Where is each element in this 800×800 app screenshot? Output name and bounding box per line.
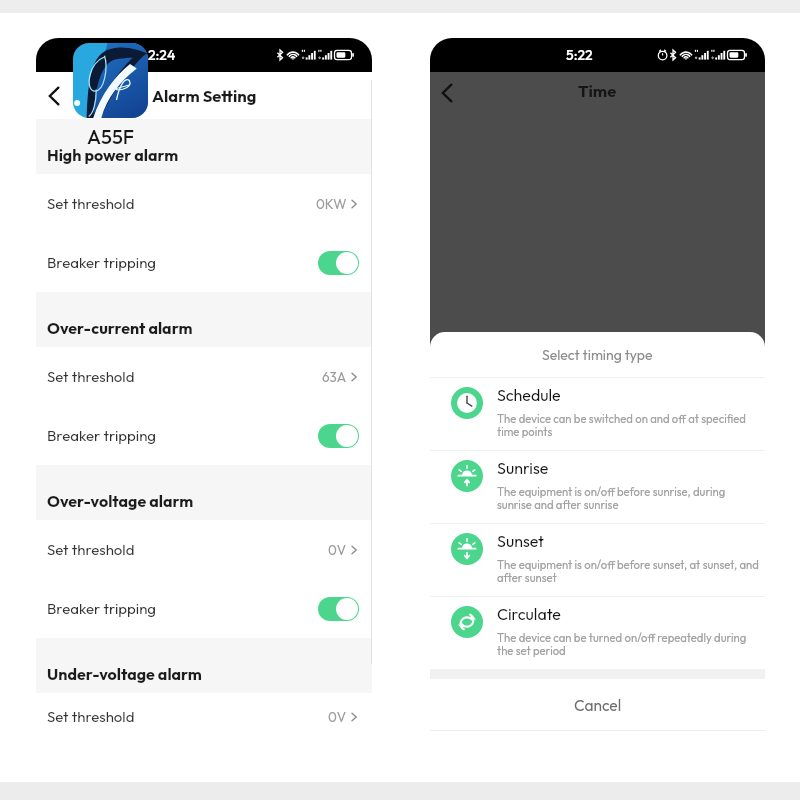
- staticText: Time: [578, 80, 617, 101]
- staticText: Set threshold: [47, 367, 135, 386]
- staticText: Sunset: [497, 531, 544, 551]
- staticText: Breaker tripping: [47, 253, 157, 272]
- staticText: 0V: [328, 708, 347, 725]
- staticText: Breaker tripping: [47, 426, 157, 445]
- staticText: Set threshold: [47, 194, 135, 213]
- button[interactable]: Cancel: [430, 679, 765, 730]
- staticText: Circulate: [497, 604, 561, 624]
- button[interactable]: Circulate: [430, 597, 765, 669]
- staticText: Cancel: [574, 695, 622, 715]
- staticText: Sunrise: [497, 458, 549, 478]
- staticText: Schedule: [497, 385, 561, 405]
- staticText: 5:22: [566, 46, 593, 64]
- button[interactable]: Sunrise: [430, 451, 765, 523]
- button[interactable]: Set threshold: [36, 174, 372, 233]
- button[interactable]: Set threshold: [36, 520, 372, 579]
- staticText: Select timing type: [542, 346, 653, 364]
- staticText: The device can be switched on and off at…: [497, 412, 746, 439]
- staticText: Set threshold: [47, 540, 135, 559]
- button[interactable]: Breaker tripping toggle: [318, 597, 359, 621]
- button[interactable]: Sunset: [430, 524, 765, 596]
- staticText: Set threshold: [47, 707, 135, 726]
- button[interactable]: Back: [37, 79, 71, 113]
- staticText: Alarm Setting: [152, 85, 257, 106]
- staticText: The device can be turned on/off repeated…: [497, 631, 747, 658]
- button[interactable]: Schedule: [430, 378, 765, 450]
- button[interactable]: Set threshold: [36, 347, 372, 406]
- staticText: 2:24: [148, 46, 176, 64]
- staticText: A55F: [87, 124, 135, 149]
- staticText: 63A: [322, 368, 347, 385]
- staticText: High power alarm: [47, 145, 179, 165]
- button[interactable]: Set threshold: [36, 693, 372, 740]
- button[interactable]: Breaker tripping toggle: [318, 424, 359, 448]
- button[interactable]: Back: [430, 76, 464, 110]
- staticText: Breaker tripping: [47, 599, 157, 618]
- staticText: Over-voltage alarm: [47, 491, 194, 511]
- staticText: The equipment is on/off before sunrise, …: [497, 485, 726, 512]
- staticText: The equipment is on/off before sunset, a…: [497, 558, 759, 585]
- staticText: 0KW: [316, 195, 347, 212]
- button[interactable]: Breaker tripping toggle: [318, 251, 359, 275]
- staticText: Under-voltage alarm: [47, 664, 202, 684]
- staticText: 0V: [328, 541, 347, 558]
- staticText: Over-current alarm: [47, 318, 193, 338]
